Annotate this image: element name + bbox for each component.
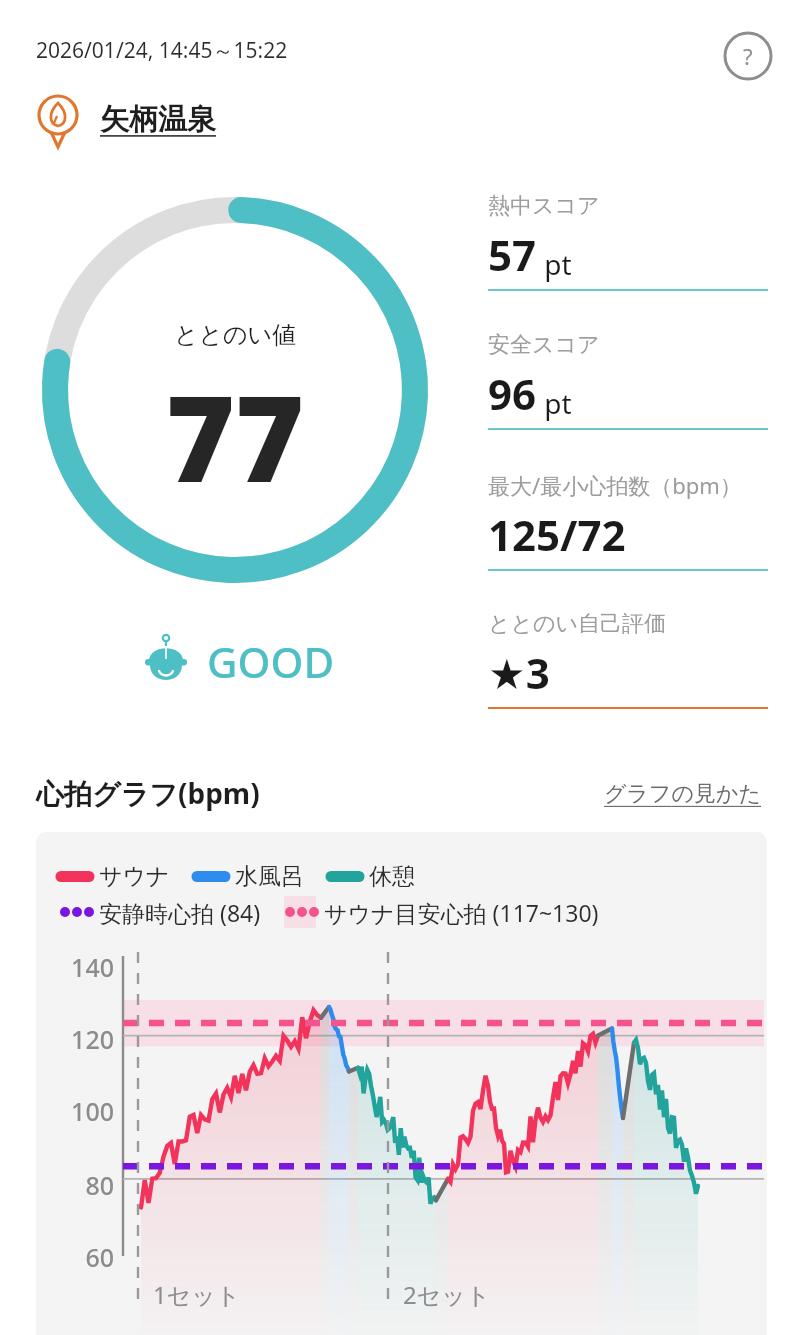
staticText: サウナ [99,862,170,891]
staticText: サウナ目安心拍 (117~130) [324,897,599,928]
staticText: ★3 [488,644,550,701]
staticText: 最大/最小心拍数（bpm） [488,470,742,500]
button[interactable]: 矢柄温泉 [28,88,216,150]
staticText: 休憩 [369,862,415,891]
staticText: 140 [44,950,114,984]
button[interactable]: グラフの見かた [604,780,762,808]
button[interactable]: 最大/最小心拍数（bpm） [488,470,768,571]
staticText: 水風呂 [235,862,304,891]
button[interactable]: Help [722,30,774,82]
staticText: 1セット [153,1278,241,1311]
staticText: 96 [488,365,537,422]
staticText: 100 [44,1094,114,1128]
staticText: 熱中スコア [488,192,600,220]
staticText: 安全スコア [488,331,600,359]
button[interactable]: 安全スコア [488,331,768,430]
staticText: グラフの見かた [604,780,762,808]
staticText: 60 [44,1240,114,1274]
button[interactable]: ととのい自己評価 [488,610,768,709]
staticText: GOOD [207,633,335,690]
staticText: 80 [44,1168,114,1202]
staticText: ? [743,41,753,71]
staticText: ととのい自己評価 [488,610,667,638]
staticText: 57 [488,226,537,283]
staticText: 安静時心拍 (84) [99,897,261,928]
staticText: ととのい値 [40,320,430,350]
staticText: pt [537,245,572,283]
staticText: 125/72 [488,506,626,563]
staticText: 心拍グラフ(bpm) [36,774,260,812]
staticText: 2セット [403,1278,491,1311]
staticText: 矢柄温泉 [100,101,216,138]
button[interactable]: 熱中スコア [488,192,768,291]
staticText: pt [537,384,572,422]
staticText: 2026/01/24, 14:45～15:22 [36,36,288,65]
staticText: 120 [44,1022,114,1056]
staticText: 77 [40,356,430,517]
